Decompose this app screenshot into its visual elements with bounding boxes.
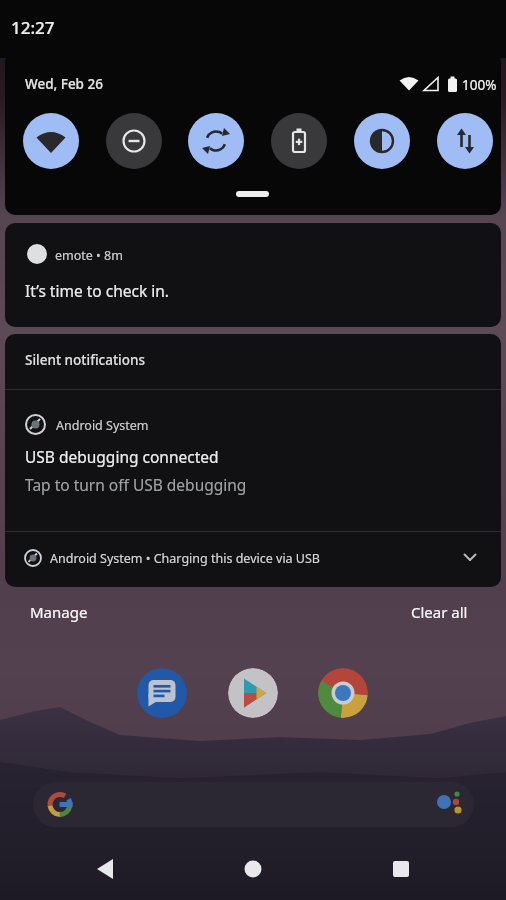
button[interactable] [91,853,123,885]
button[interactable] [33,782,474,827]
button[interactable] [385,853,417,885]
button[interactable] [23,113,79,169]
button[interactable]: Clear all [411,602,468,622]
button[interactable] [354,113,410,169]
staticText: Wed, Feb 26 [25,75,103,93]
button[interactable]: emote • 8m [5,223,501,327]
button[interactable] [237,853,269,885]
button[interactable] [188,113,244,169]
button[interactable] [106,113,162,169]
button[interactable] [228,668,278,718]
staticText: Android System • Charging this device vi… [50,550,320,567]
button[interactable]: Android System • Charging this device vi… [5,532,501,585]
staticText: USB debugging connected [25,446,219,467]
staticText: Silent notifications [25,351,146,369]
button[interactable] [437,113,493,169]
button[interactable] [137,668,187,718]
button[interactable] [271,113,327,169]
staticText: Tap to turn off USB debugging [25,474,247,495]
staticText: 12:27 [11,16,55,39]
staticText: 100% [462,76,497,94]
button[interactable]: Manage [30,602,88,622]
staticText: Android System [56,417,149,434]
button[interactable]: Android System [5,390,501,531]
button[interactable] [318,668,368,718]
staticText: emote • 8m [55,247,123,264]
staticText: It’s time to check in. [25,280,169,301]
